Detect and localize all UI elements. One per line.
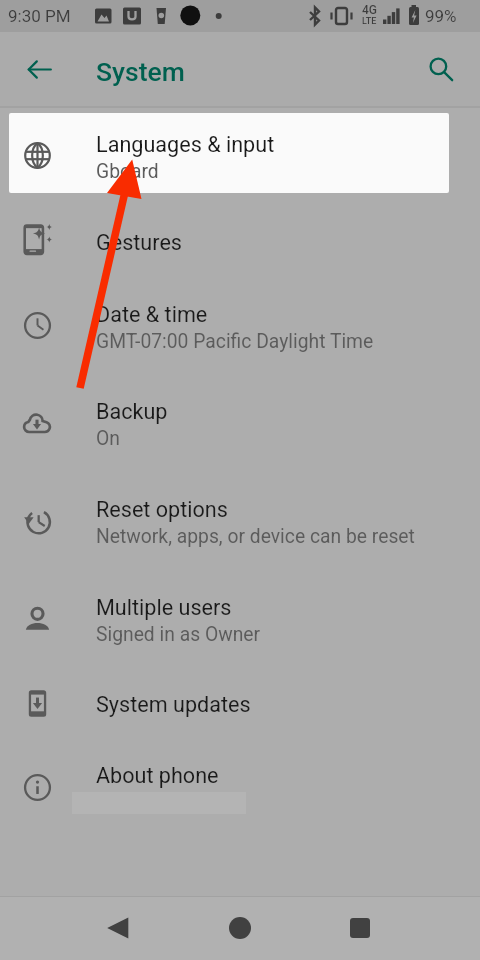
button[interactable]: Languages & input (0, 113, 480, 197)
staticText: On (96, 427, 120, 450)
staticText: System (96, 56, 185, 87)
staticText: 9:30 PM (8, 6, 71, 26)
staticText: Network, apps, or device can be reset (96, 525, 415, 548)
button[interactable]: Home (216, 904, 264, 952)
button[interactable]: Overview (336, 904, 384, 952)
button[interactable]: Reset options (0, 479, 480, 563)
staticText: LTE (362, 16, 377, 27)
staticText: About phone (96, 763, 219, 788)
button[interactable]: System updates (0, 661, 480, 745)
staticText: 4G (362, 3, 377, 17)
button[interactable]: Multiple users (0, 577, 480, 661)
staticText: Gboard (96, 160, 159, 183)
staticText: Gestures (96, 230, 182, 255)
button[interactable]: About phone (0, 745, 480, 829)
staticText: 99% (425, 6, 457, 26)
staticText: System updates (96, 692, 251, 717)
button[interactable]: Date & time (0, 283, 480, 367)
staticText: Languages & input (96, 132, 275, 157)
staticText: Signed in as Owner (96, 623, 261, 646)
staticText: Date & time (96, 302, 208, 327)
button[interactable]: Backup (0, 381, 480, 465)
staticText: Multiple users (96, 595, 232, 620)
staticText: Backup (96, 399, 168, 424)
button[interactable]: Search (416, 44, 466, 94)
button[interactable]: Gestures (0, 198, 480, 282)
staticText: Reset options (96, 497, 228, 522)
staticText: GMT-07:00 Pacific Daylight Time (96, 330, 374, 353)
button[interactable]: Navigate up (14, 44, 64, 94)
button[interactable]: Back (94, 904, 142, 952)
